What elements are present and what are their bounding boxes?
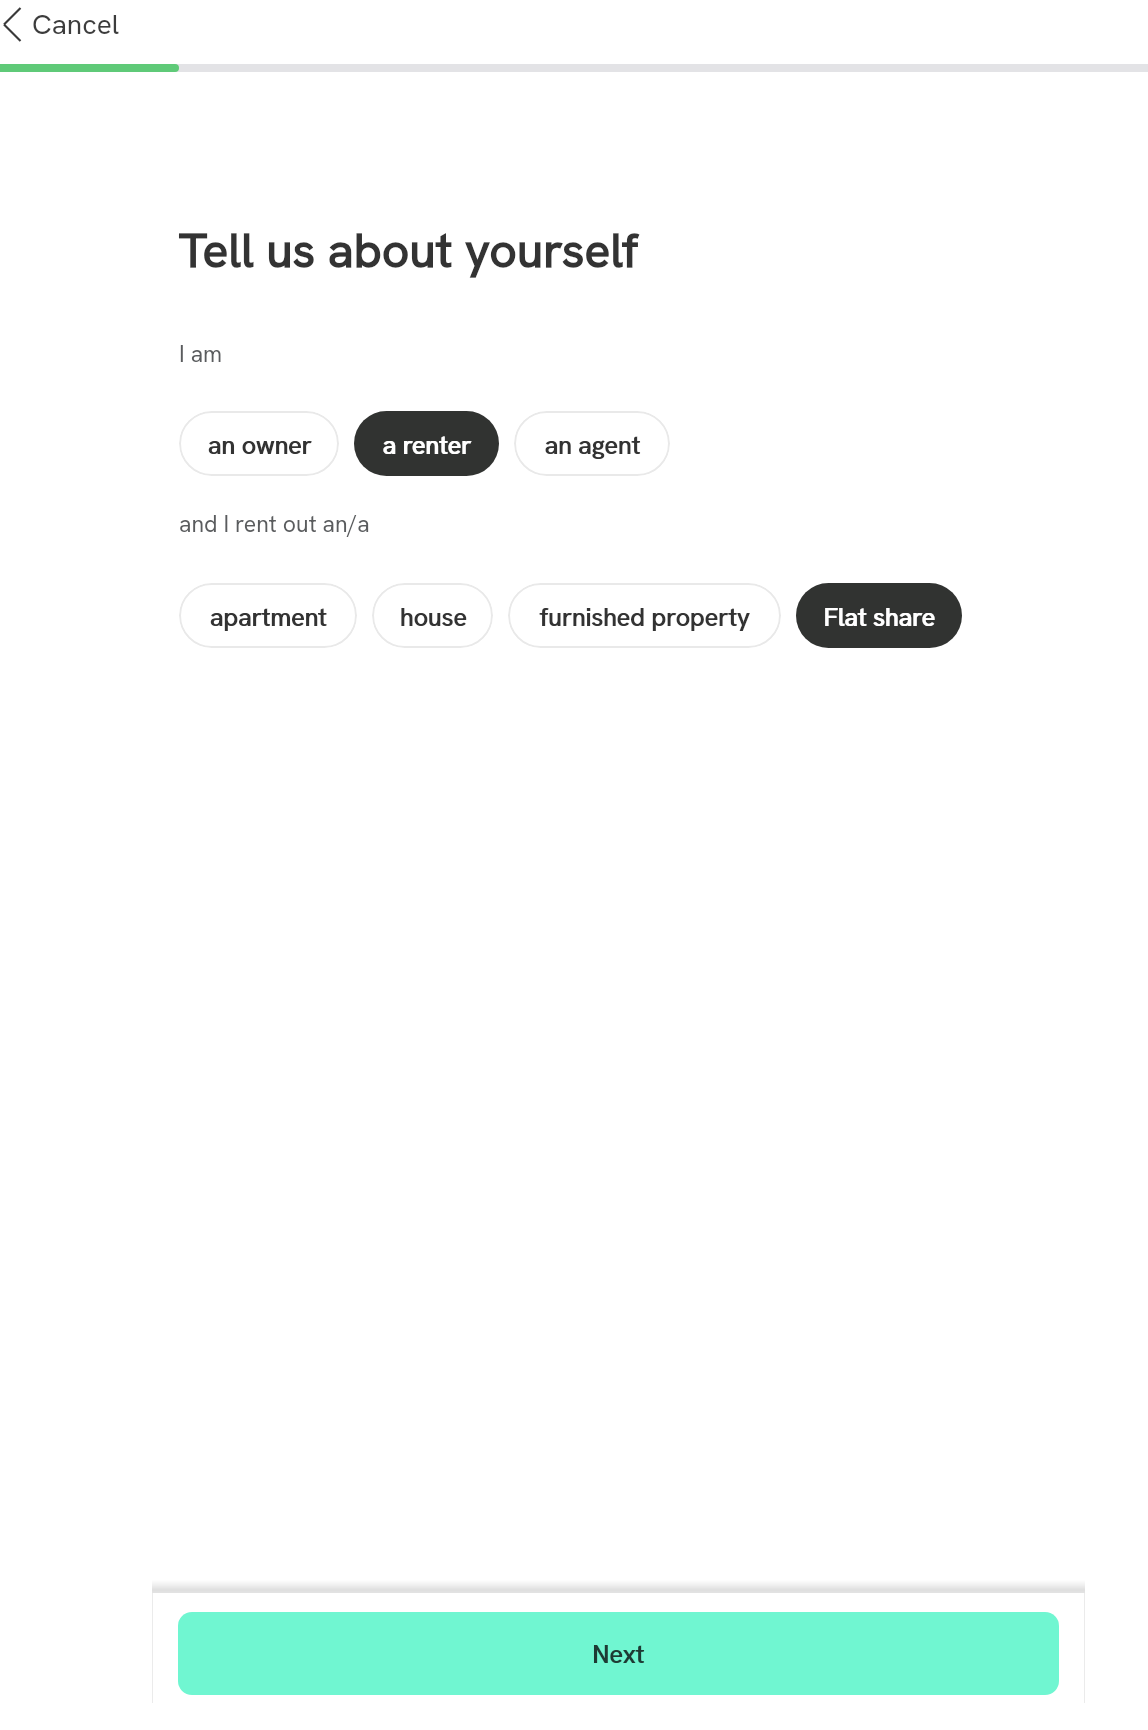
button[interactable]: Flat share [796,583,962,648]
staticText: an agent [544,429,640,462]
staticText: Flat share [824,601,936,634]
button[interactable]: a renter [354,411,499,476]
staticText: an agent [545,429,641,462]
staticText: Flat share [823,601,935,634]
staticText: apartment [209,601,327,634]
button[interactable]: Next [178,1612,1059,1695]
staticText: Next [593,1638,645,1671]
button[interactable]: an owner [179,411,339,476]
staticText: a renter [383,429,472,462]
button[interactable]: apartment [179,583,357,648]
button[interactable]: furnished property [508,583,781,648]
staticText: house [399,601,467,634]
staticText: an owner [208,429,313,462]
button[interactable]: an agent [514,411,670,476]
staticText: house [400,601,468,634]
button[interactable]: house [372,583,493,648]
staticText: I am [179,339,223,369]
staticText: apartment [210,601,328,634]
staticText: Tell us about yourself [179,219,639,282]
staticText: Next [592,1638,644,1671]
staticText: an owner [207,429,312,462]
staticText: furnished property [540,601,751,634]
staticText: furnished property [539,601,750,634]
button[interactable]: Cancel [0,2,136,50]
staticText: a renter [382,429,471,462]
staticText: and I rent out an/a [179,509,370,539]
staticText: Cancel [32,6,120,42]
